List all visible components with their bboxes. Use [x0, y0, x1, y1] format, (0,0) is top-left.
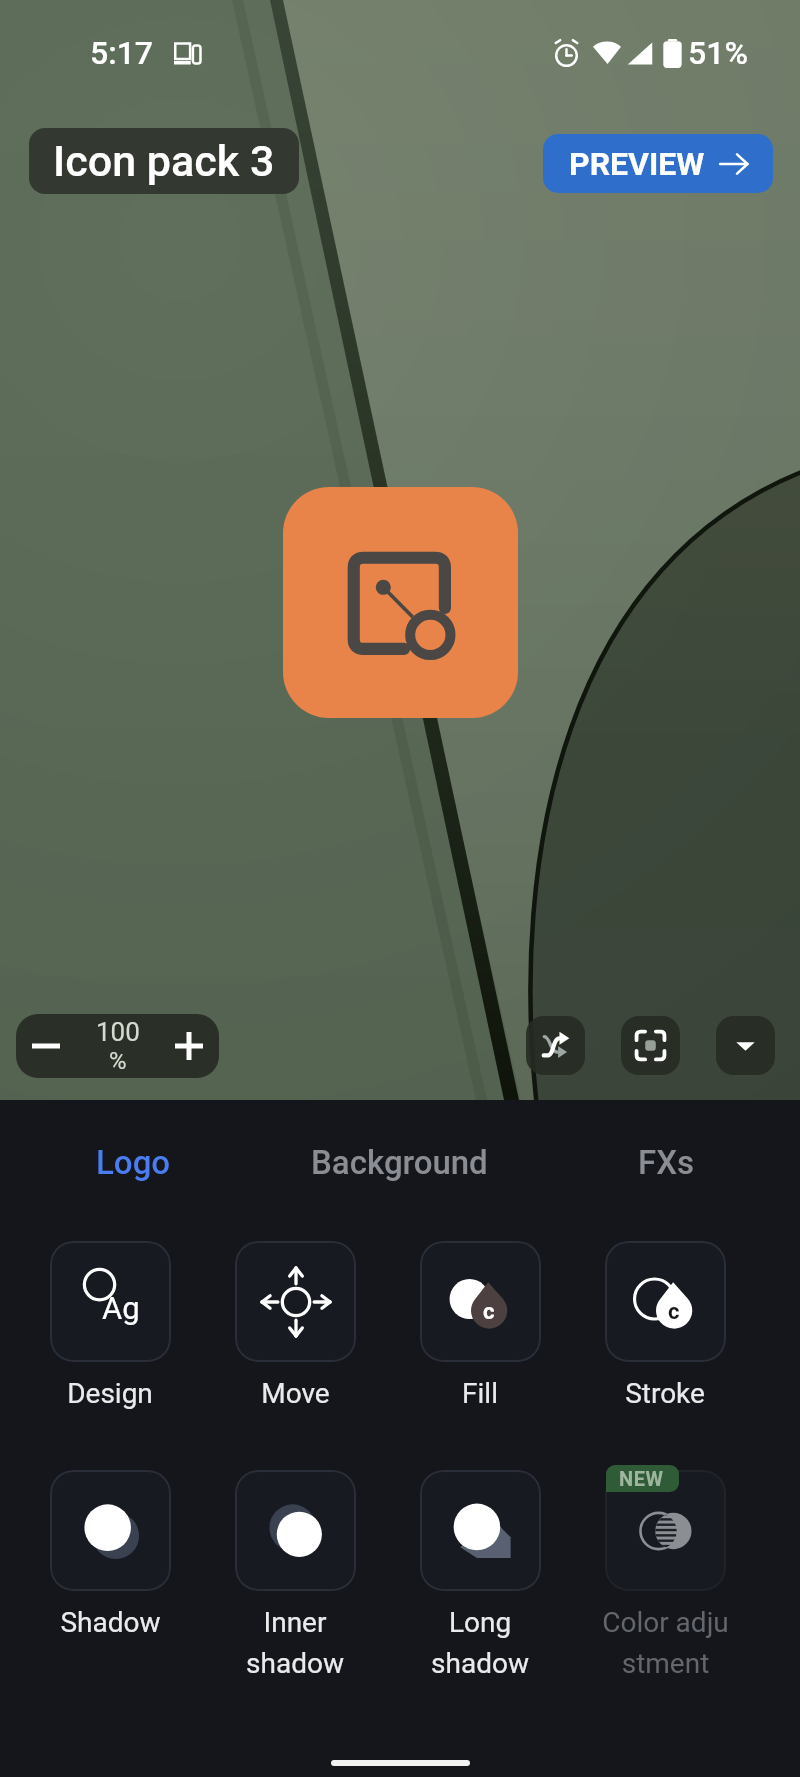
staticText: Background — [311, 1143, 488, 1182]
staticText: Move — [261, 1377, 330, 1410]
button[interactable] — [605, 1470, 726, 1591]
staticText: Long shadow — [431, 1606, 529, 1680]
button[interactable]: Background — [266, 1100, 533, 1214]
button[interactable]: Zoom in — [159, 1014, 219, 1078]
button[interactable]: Logo preview — [283, 487, 518, 718]
staticText: Shadow — [60, 1606, 161, 1639]
staticText: 5:17 — [90, 34, 154, 72]
staticText: Stroke — [625, 1377, 705, 1410]
button[interactable]: More options — [716, 1016, 775, 1075]
staticText: Fill — [462, 1377, 498, 1410]
button[interactable]: FXs — [533, 1100, 800, 1214]
button[interactable] — [235, 1241, 356, 1362]
button[interactable] — [50, 1470, 171, 1591]
button[interactable]: Zoom out — [16, 1014, 76, 1078]
button[interactable]: Ag — [50, 1241, 171, 1362]
staticText: Icon pack 3 — [53, 136, 275, 186]
staticText: % — [109, 1047, 127, 1075]
staticText: 100 — [96, 1017, 140, 1047]
button[interactable]: PREVIEW — [543, 134, 773, 193]
button[interactable]: Fit to screen — [621, 1016, 680, 1075]
button[interactable]: c — [605, 1241, 726, 1362]
button[interactable] — [420, 1470, 541, 1591]
staticText: 51% — [688, 34, 748, 72]
staticText: FXs — [638, 1143, 695, 1182]
button[interactable] — [235, 1470, 356, 1591]
staticText: Inner shadow — [246, 1606, 344, 1680]
button[interactable]: c — [420, 1241, 541, 1362]
staticText: Color adju stment — [602, 1606, 729, 1680]
staticText: Design — [67, 1377, 153, 1410]
button[interactable]: Shuffle — [526, 1016, 585, 1075]
button[interactable]: Icon pack 3 — [29, 128, 299, 194]
staticText: Logo — [96, 1143, 171, 1182]
button[interactable]: Logo — [0, 1100, 266, 1214]
staticText: c — [483, 1299, 495, 1325]
staticText: NEW — [619, 1467, 664, 1490]
staticText: PREVIEW — [569, 145, 705, 183]
staticText: Ag — [102, 1290, 140, 1326]
staticText: c — [668, 1299, 680, 1325]
